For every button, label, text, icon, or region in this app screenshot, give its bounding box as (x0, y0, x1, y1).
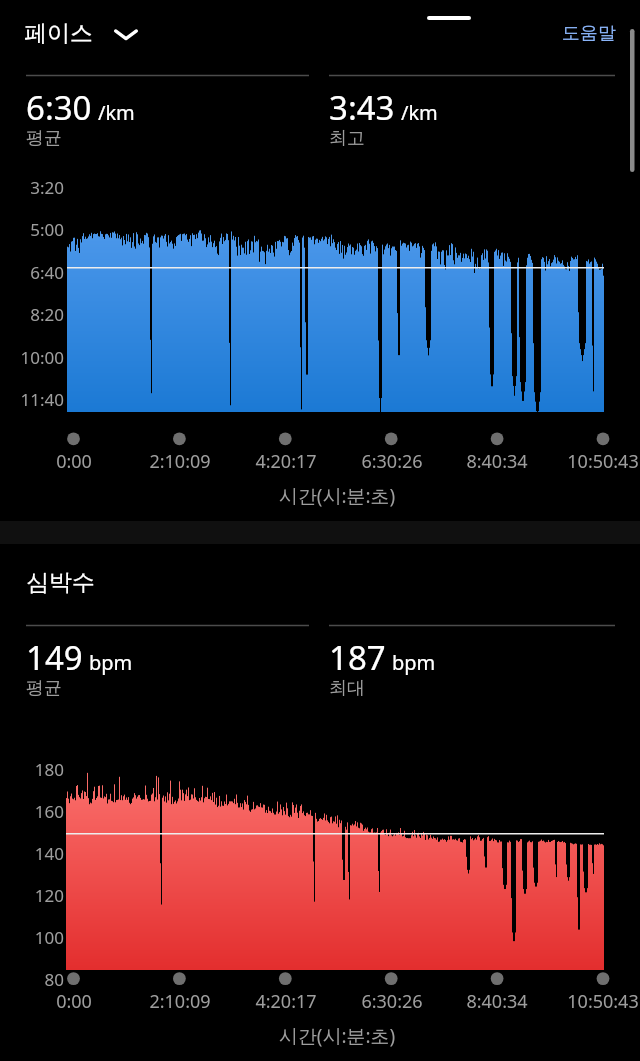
staticText: 160 (0, 800, 64, 823)
staticText: 8:40:34 (442, 449, 552, 474)
staticText: 6:30:26 (337, 449, 447, 474)
staticText: 평균 (26, 127, 62, 150)
staticText: 149 (26, 635, 83, 680)
staticText: 11:40 (0, 388, 64, 411)
staticText: 80 (0, 968, 64, 991)
staticText: 최고 (329, 127, 365, 150)
staticText: 3:43 (329, 85, 395, 130)
staticText: 8:20 (0, 303, 64, 326)
staticText: 시간(시:분:초) (237, 483, 437, 509)
staticText: 140 (0, 842, 64, 865)
staticText: 페이스 (24, 19, 93, 48)
staticText: 187 (329, 635, 386, 680)
staticText: 최대 (329, 677, 365, 700)
staticText: 6:30:26 (337, 989, 447, 1014)
staticText: 120 (0, 884, 64, 907)
button[interactable]: 도움말 (562, 22, 616, 45)
staticText: 2:10:09 (125, 989, 235, 1014)
staticText: 3:20 (0, 176, 64, 199)
staticText: 5:00 (0, 218, 64, 241)
staticText: /km (401, 99, 438, 126)
staticText: 0:00 (19, 989, 129, 1014)
staticText: 평균 (26, 677, 62, 700)
staticText: 10:50:43 (548, 989, 640, 1014)
staticText: 시간(시:분:초) (237, 1023, 437, 1049)
staticText: 0:00 (19, 449, 129, 474)
staticText: 8:40:34 (442, 989, 552, 1014)
staticText: 2:10:09 (125, 449, 235, 474)
staticText: 6:40 (0, 261, 64, 284)
staticText: 180 (0, 758, 64, 781)
other: Expand (113, 21, 139, 47)
staticText: 10:00 (0, 346, 64, 369)
staticText: 10:50:43 (548, 449, 640, 474)
staticText: 심박수 (26, 568, 95, 597)
button[interactable]: 페이스 (24, 19, 139, 48)
staticText: 4:20:17 (231, 989, 341, 1014)
staticText: 도움말 (562, 22, 616, 45)
staticText: bpm (89, 649, 133, 676)
staticText: bpm (392, 649, 436, 676)
staticText: 4:20:17 (231, 449, 341, 474)
staticText: /km (98, 99, 135, 126)
staticText: 100 (0, 926, 64, 949)
staticText: 6:30 (26, 85, 92, 130)
button[interactable]: 심박수 (26, 568, 95, 597)
